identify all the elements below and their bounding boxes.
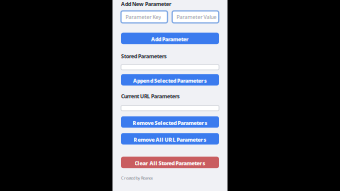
staticText: Clear All Stored Parameters xyxy=(134,160,205,167)
button[interactable]: Clear All Stored Parameters xyxy=(121,157,219,168)
staticText: Parameter Value xyxy=(177,13,217,20)
staticText: Parameter Key xyxy=(125,13,161,20)
staticText: Remove All URL Parameters xyxy=(133,136,206,143)
button[interactable]: Append Selected Parameters xyxy=(121,74,219,85)
button[interactable]: Remove All URL Parameters xyxy=(121,133,219,144)
staticText: Current URL Parameters xyxy=(121,93,180,100)
staticText: Stored Parameters xyxy=(121,53,167,60)
staticText: Created by Reanos xyxy=(121,175,153,181)
staticText: Remove Selected Parameters xyxy=(132,119,207,126)
button[interactable]: Remove Selected Parameters xyxy=(121,116,219,128)
staticText: Add New Parameter xyxy=(121,0,171,7)
button[interactable]: Add Parameter xyxy=(121,33,219,44)
staticText: Append Selected Parameters xyxy=(133,77,207,84)
staticText: Add Parameter xyxy=(151,36,189,43)
